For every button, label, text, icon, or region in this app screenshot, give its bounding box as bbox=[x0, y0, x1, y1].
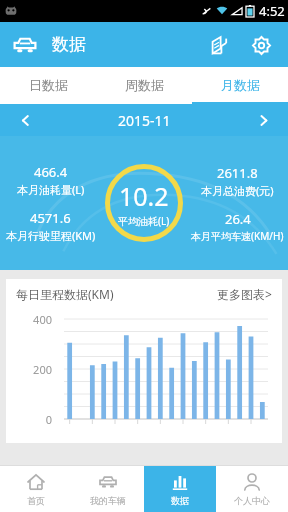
staticText: 首页 bbox=[27, 495, 45, 506]
staticText: 本月油耗量(L) bbox=[17, 182, 85, 197]
button[interactable]: Refuel record bbox=[202, 28, 236, 62]
staticText: 本月行驶里程(KM) bbox=[6, 228, 96, 243]
staticText: 周数据 bbox=[125, 77, 164, 93]
staticText: 26.4 bbox=[225, 210, 251, 228]
staticText: 200 bbox=[20, 362, 52, 377]
staticText: 日数据 bbox=[29, 77, 68, 93]
staticText: 400 bbox=[20, 312, 52, 327]
button[interactable]: Logo bbox=[10, 30, 40, 60]
button[interactable]: 月数据 bbox=[192, 67, 288, 102]
staticText: 月数据 bbox=[221, 77, 260, 93]
staticText: 10.2 bbox=[119, 179, 169, 213]
button[interactable]: 数据 bbox=[144, 466, 216, 512]
staticText: 4:52 bbox=[259, 2, 285, 20]
staticText: 本月平均车速(KM/H) bbox=[191, 229, 284, 243]
button[interactable]: 日数据 bbox=[0, 67, 96, 102]
button[interactable]: 个人中心 bbox=[216, 466, 288, 512]
staticText: 更多图表> bbox=[217, 286, 272, 302]
staticText: 4571.6 bbox=[30, 209, 71, 227]
staticText: 平均油耗(L) bbox=[118, 214, 170, 228]
staticText: 2015-11 bbox=[118, 111, 171, 130]
staticText: 数据 bbox=[52, 34, 86, 55]
staticText: 0 bbox=[20, 412, 52, 427]
button[interactable]: 周数据 bbox=[96, 67, 192, 102]
button[interactable]: Settings bbox=[244, 28, 278, 62]
staticText: 466.4 bbox=[34, 163, 68, 181]
button[interactable]: Previous month bbox=[0, 104, 50, 136]
button[interactable]: Next month bbox=[238, 104, 288, 136]
staticText: 数据 bbox=[171, 495, 189, 506]
staticText: 2611.8 bbox=[217, 164, 258, 182]
staticText: 个人中心 bbox=[234, 495, 270, 506]
button[interactable]: 更多图表> bbox=[217, 286, 272, 302]
button[interactable]: 首页 bbox=[0, 466, 72, 512]
staticText: 我的车辆 bbox=[90, 495, 126, 506]
staticText: 每日里程数据(KM) bbox=[16, 286, 114, 302]
button[interactable]: 我的车辆 bbox=[72, 466, 144, 512]
staticText: 本月总油费(元) bbox=[201, 183, 274, 198]
